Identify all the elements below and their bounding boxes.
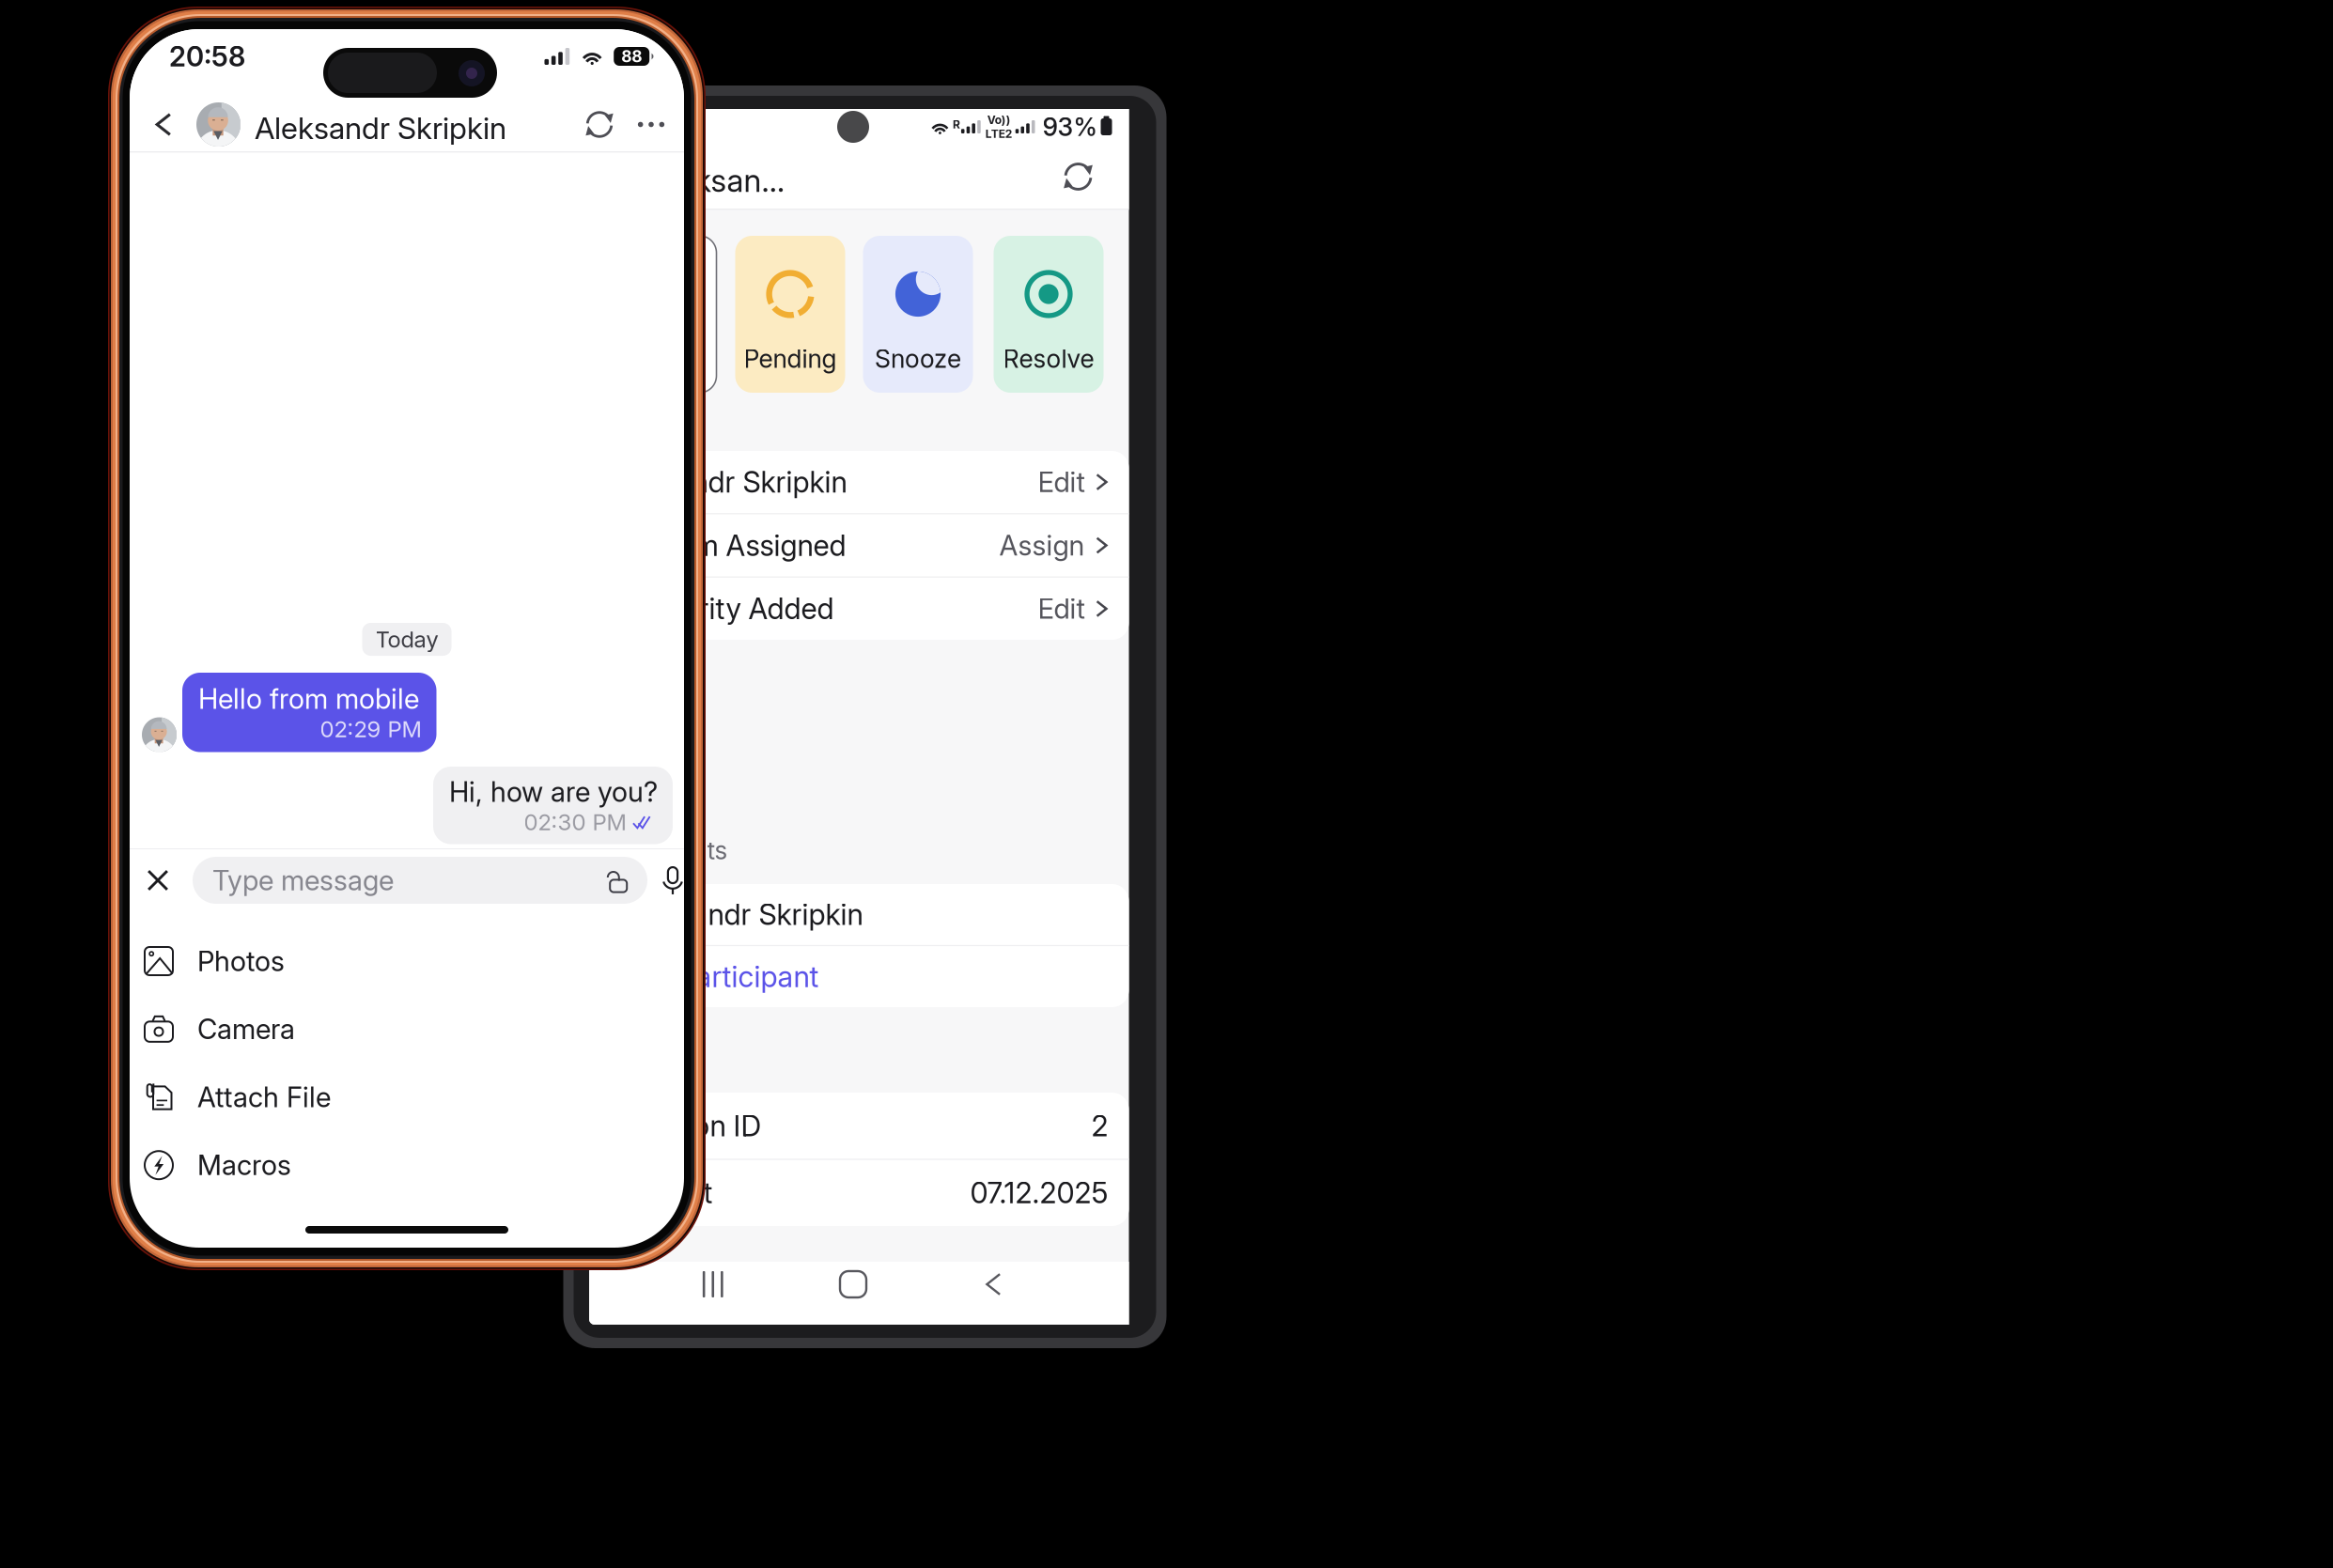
button[interactable]: Camera (130, 995, 684, 1063)
staticText: 20:58 (169, 40, 245, 73)
button[interactable]: Team Assigned (624, 514, 1129, 576)
staticText: Today (375, 626, 438, 653)
staticText: Edit (1038, 465, 1085, 499)
staticText: Macros (197, 1149, 291, 1182)
button[interactable]: Refresh (1055, 153, 1102, 200)
staticText: 02:29 PM (320, 715, 421, 743)
staticText: 93% (1042, 112, 1097, 142)
staticText: Edit (1038, 592, 1085, 625)
staticText: eksandr Skripkin (647, 897, 863, 932)
staticText: Attach File (197, 1081, 331, 1114)
staticText: Hello from mobile (198, 682, 419, 715)
button[interactable]: Macros (130, 1131, 684, 1199)
staticText: 88 (621, 47, 642, 66)
staticText: Hi, how are you? (449, 775, 658, 808)
staticText: Pending (744, 344, 837, 374)
button[interactable]: ksandr Skripkin (624, 451, 1129, 513)
button[interactable]: Priority Added (624, 578, 1129, 640)
button[interactable]: Back (960, 1265, 1026, 1304)
staticText: Resolve (1003, 344, 1094, 374)
staticText: Assign (999, 529, 1085, 562)
button[interactable]: Pending (735, 236, 845, 393)
staticText: Priority Added (647, 591, 834, 626)
staticText: Photos (197, 944, 285, 978)
staticText: 2 (1091, 1108, 1108, 1143)
button[interactable]: Resolve (994, 236, 1104, 393)
staticText: Aleksan… (651, 162, 785, 199)
button[interactable]: ld Participant (624, 946, 1129, 1007)
staticText: Camera (197, 1012, 295, 1046)
button[interactable]: Close attachments (135, 858, 180, 903)
staticText: Team Assigned (647, 528, 846, 563)
staticText: ed at (647, 1175, 713, 1210)
button[interactable]: Photos (130, 927, 684, 995)
staticText: Vo)) (987, 113, 1011, 127)
staticText: 07.12.2025 (970, 1175, 1108, 1210)
staticText: ksandr Skripkin (647, 465, 847, 499)
button[interactable]: More options (628, 101, 675, 148)
staticText: Snooze (875, 344, 961, 374)
button[interactable]: Snooze (863, 236, 973, 393)
button[interactable]: Back (139, 100, 188, 149)
staticText: sation ID (647, 1108, 762, 1143)
button[interactable]: Attach File (130, 1063, 684, 1131)
staticText: LTE2 (985, 127, 1013, 140)
staticText: R (953, 117, 960, 131)
button[interactable]: Home (820, 1265, 886, 1304)
staticText: Type message (212, 864, 394, 897)
staticText: ld Participant (647, 959, 819, 994)
button[interactable]: Voice message (650, 858, 695, 903)
staticText: Aleksandr Skripkin (255, 110, 506, 146)
staticText: ts (707, 835, 728, 865)
button[interactable]: Refresh (576, 101, 623, 148)
button[interactable]: Recent apps (680, 1265, 746, 1304)
staticText: 02:30 PM (524, 808, 626, 836)
